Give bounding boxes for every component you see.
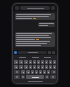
button[interactable]: Backspace <box>51 70 56 74</box>
button[interactable]: Key <box>14 65 18 69</box>
button[interactable]: Emoji <box>21 75 25 79</box>
button[interactable]: Key <box>53 60 56 64</box>
button[interactable]: Attach <box>14 51 17 54</box>
button[interactable]: Key <box>39 70 42 74</box>
button[interactable] <box>15 32 55 47</box>
button[interactable]: Key <box>31 70 34 74</box>
button[interactable] <box>38 22 55 27</box>
button[interactable]: Key <box>24 60 28 64</box>
button[interactable]: Key <box>41 65 44 69</box>
button[interactable]: Key <box>33 60 36 64</box>
button[interactable]: More options <box>51 6 55 10</box>
button[interactable]: Key <box>29 60 32 64</box>
button[interactable]: Key <box>49 65 52 69</box>
button[interactable]: Key <box>33 65 36 69</box>
button[interactable]: Key <box>24 65 28 69</box>
button[interactable]: Suggestion <box>44 57 51 58</box>
button[interactable]: Key <box>49 60 52 64</box>
button[interactable] <box>15 13 55 20</box>
button[interactable]: Suggestion <box>32 57 39 58</box>
button[interactable]: Key <box>29 65 32 69</box>
button[interactable]: Key <box>53 65 56 69</box>
button[interactable] <box>18 51 47 54</box>
button[interactable]: Menu <box>15 6 19 10</box>
button[interactable]: Key <box>45 60 48 64</box>
button[interactable]: Key <box>43 70 46 74</box>
button[interactable]: Key <box>37 65 40 69</box>
button[interactable]: Key <box>19 60 23 64</box>
button[interactable]: Key <box>14 60 18 64</box>
button[interactable]: Key <box>41 60 44 64</box>
button[interactable]: Space <box>26 75 44 79</box>
button[interactable]: Return <box>50 75 56 79</box>
button[interactable]: Shift <box>14 70 20 74</box>
button[interactable]: Symbols <box>14 75 20 79</box>
button[interactable]: Key <box>45 65 48 69</box>
button[interactable]: Key <box>21 70 25 74</box>
button[interactable]: Key <box>26 70 30 74</box>
button[interactable] <box>20 6 50 10</box>
button[interactable]: Key <box>19 65 23 69</box>
button[interactable]: Suggestion <box>19 57 26 58</box>
button[interactable]: Key <box>47 70 50 74</box>
button[interactable]: Key <box>37 60 40 64</box>
button[interactable]: Key <box>35 70 38 74</box>
button[interactable]: Period <box>45 75 49 79</box>
